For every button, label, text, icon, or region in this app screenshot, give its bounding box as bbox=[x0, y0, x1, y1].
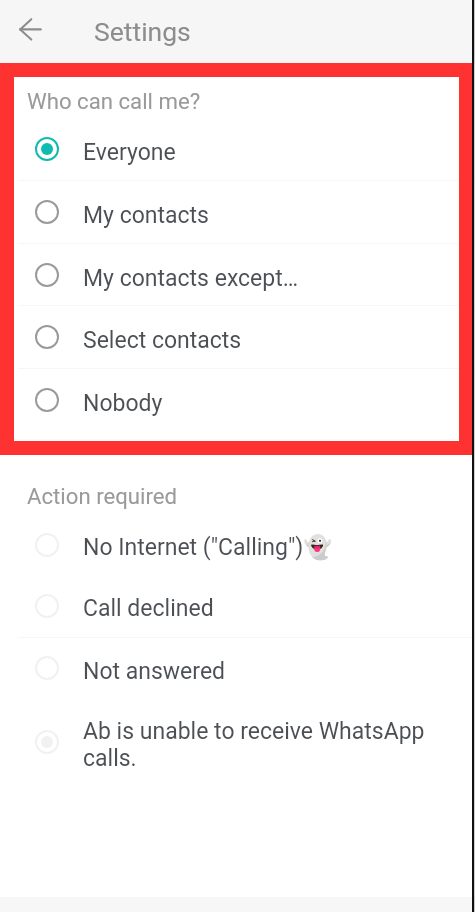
button[interactable]: Back bbox=[8, 10, 52, 54]
button[interactable]: Nobody bbox=[0, 369, 475, 431]
button[interactable]: Select contacts bbox=[0, 306, 475, 368]
button[interactable]: Everyone bbox=[0, 118, 475, 180]
button[interactable]: My contacts bbox=[0, 181, 475, 243]
staticText: Select contacts bbox=[83, 327, 242, 354]
staticText: Call declined bbox=[83, 595, 214, 622]
button[interactable]: My contacts except… bbox=[0, 244, 475, 306]
button[interactable]: Call declined bbox=[0, 575, 475, 636]
staticText: My contacts except… bbox=[83, 265, 299, 292]
staticText: Who can call me? bbox=[27, 88, 201, 114]
button[interactable]: Ab is unable to receive WhatsApp calls. bbox=[0, 706, 475, 778]
staticText: Ab is unable to receive WhatsApp calls. bbox=[83, 718, 428, 772]
staticText: Not answered bbox=[83, 658, 226, 685]
staticText: Everyone bbox=[83, 139, 176, 166]
staticText: Settings bbox=[94, 16, 191, 47]
button[interactable]: No Internet ("Calling")👻 bbox=[0, 514, 475, 575]
staticText: No Internet ("Calling")👻 bbox=[83, 534, 332, 561]
staticText: Nobody bbox=[83, 390, 163, 417]
staticText: My contacts bbox=[83, 202, 209, 229]
button[interactable]: Not answered bbox=[0, 638, 475, 698]
staticText: Action required bbox=[27, 483, 178, 509]
